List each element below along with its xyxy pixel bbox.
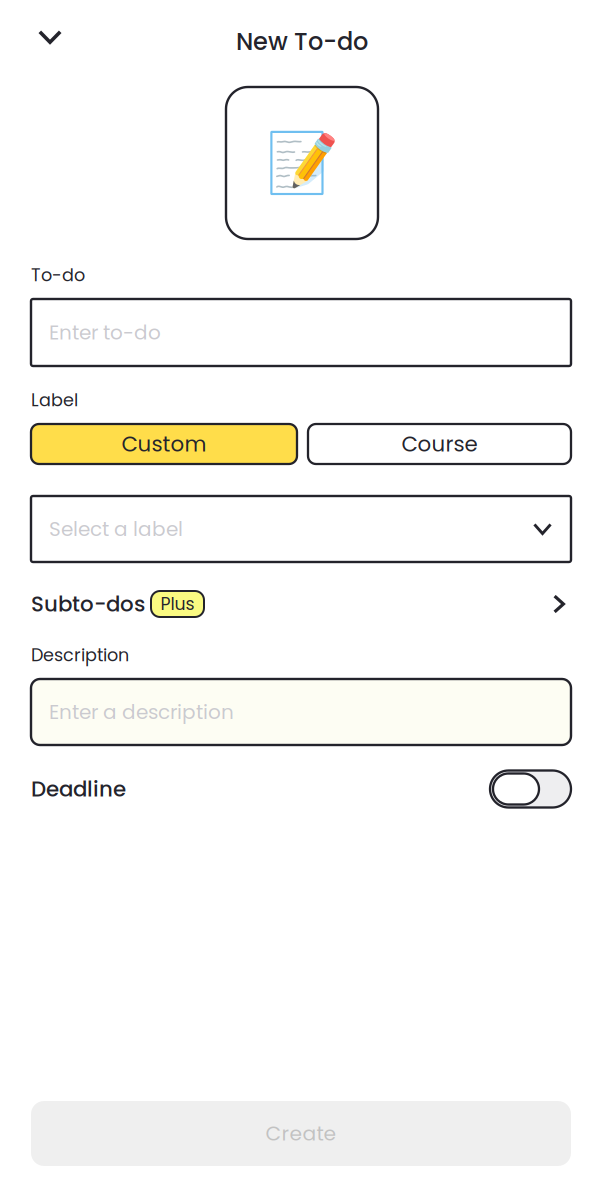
staticText: Create bbox=[265, 1119, 336, 1148]
staticText: 📝 bbox=[265, 129, 338, 197]
button[interactable]: Create bbox=[31, 1101, 571, 1166]
staticText: Subto-dos bbox=[31, 589, 145, 619]
staticText: Enter a description bbox=[49, 698, 234, 726]
staticText: Label bbox=[31, 388, 78, 412]
button[interactable]: Deadline toggle bbox=[490, 770, 571, 807]
staticText: Select a label bbox=[49, 515, 183, 543]
button[interactable]: Dismiss bbox=[0, 0, 100, 76]
button[interactable]: Custom bbox=[31, 424, 297, 464]
button[interactable]: Select a label bbox=[31, 496, 571, 562]
button[interactable]: Choose icon bbox=[226, 87, 378, 239]
staticText: Enter to-do bbox=[49, 318, 161, 346]
staticText: Course bbox=[401, 429, 477, 459]
button[interactable]: Course bbox=[308, 424, 571, 464]
staticText: Plus bbox=[160, 592, 194, 616]
staticText: Deadline bbox=[31, 774, 126, 804]
staticText: New To-do bbox=[236, 25, 368, 58]
staticText: Description bbox=[31, 643, 129, 667]
staticText: Custom bbox=[121, 429, 206, 459]
staticText: To-do bbox=[31, 263, 85, 287]
button[interactable]: Subto-dos bbox=[31, 587, 571, 621]
